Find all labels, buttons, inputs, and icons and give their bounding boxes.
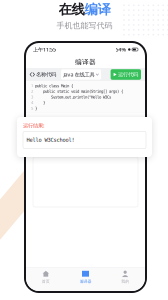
staticText: public class Main {: [35, 83, 73, 88]
button[interactable]: 名称代码: [30, 71, 56, 78]
staticText: System.out.println("Hello W3Cs: [35, 95, 111, 99]
staticText: 首页: [42, 279, 50, 284]
staticText: 名称代码: [36, 71, 56, 78]
staticText: 在线: [58, 1, 84, 18]
staticText: Java 在线工具: [64, 71, 95, 78]
staticText: }: [35, 100, 45, 105]
staticText: 运行代码: [118, 71, 138, 78]
staticText: 4: [31, 100, 33, 105]
button[interactable]: Java 在线工具: [61, 69, 101, 80]
button[interactable]: 编译器: [66, 268, 105, 286]
staticText: Hello W3Cschool!: [26, 137, 74, 143]
button[interactable]: 首页: [26, 268, 66, 286]
staticText: 编译器: [79, 279, 91, 284]
staticText: 1: [31, 83, 33, 88]
staticText: 上午11:55: [33, 46, 56, 53]
staticText: 运行结果:: [23, 122, 44, 129]
staticText: 5: [31, 106, 33, 111]
button[interactable]: 我的: [105, 268, 145, 286]
staticText: 我的: [121, 279, 129, 284]
staticText: 54%: [116, 46, 127, 53]
staticText: 编译器: [75, 58, 96, 66]
button[interactable]: 运行代码: [111, 69, 141, 80]
staticText: 3: [31, 95, 33, 99]
staticText: }: [35, 106, 37, 111]
staticText: public static void main(String[] args) {: [35, 89, 123, 94]
staticText: 手机也能写代码: [56, 21, 112, 31]
staticText: 编译: [84, 1, 110, 18]
staticText: 2: [31, 89, 33, 94]
